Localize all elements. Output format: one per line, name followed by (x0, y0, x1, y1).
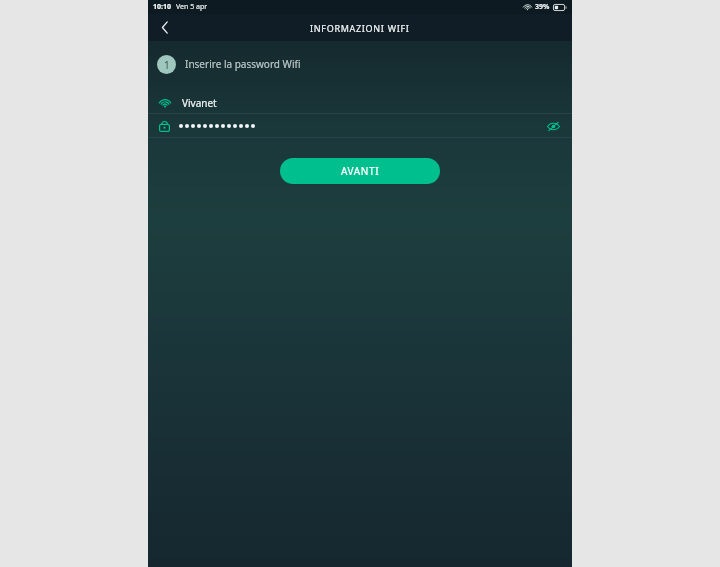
staticText: 39% (535, 2, 550, 12)
staticText: Vivanet (182, 96, 217, 110)
staticText: 1 (164, 58, 170, 72)
staticText: 10:10 (153, 2, 171, 12)
button[interactable]: Back (148, 14, 182, 41)
button[interactable]: Vivanet (148, 92, 572, 113)
button[interactable]: 1 (148, 46, 572, 82)
button[interactable]: Show password (148, 114, 572, 137)
staticText: Inserire la password Wifi (185, 57, 301, 71)
button[interactable]: Show password (543, 116, 563, 136)
staticText: Ven 5 apr (176, 2, 208, 12)
staticText: AVANTI (341, 164, 380, 178)
staticText: INFORMAZIONI WIFI (310, 22, 410, 34)
button[interactable]: AVANTI (280, 158, 440, 184)
